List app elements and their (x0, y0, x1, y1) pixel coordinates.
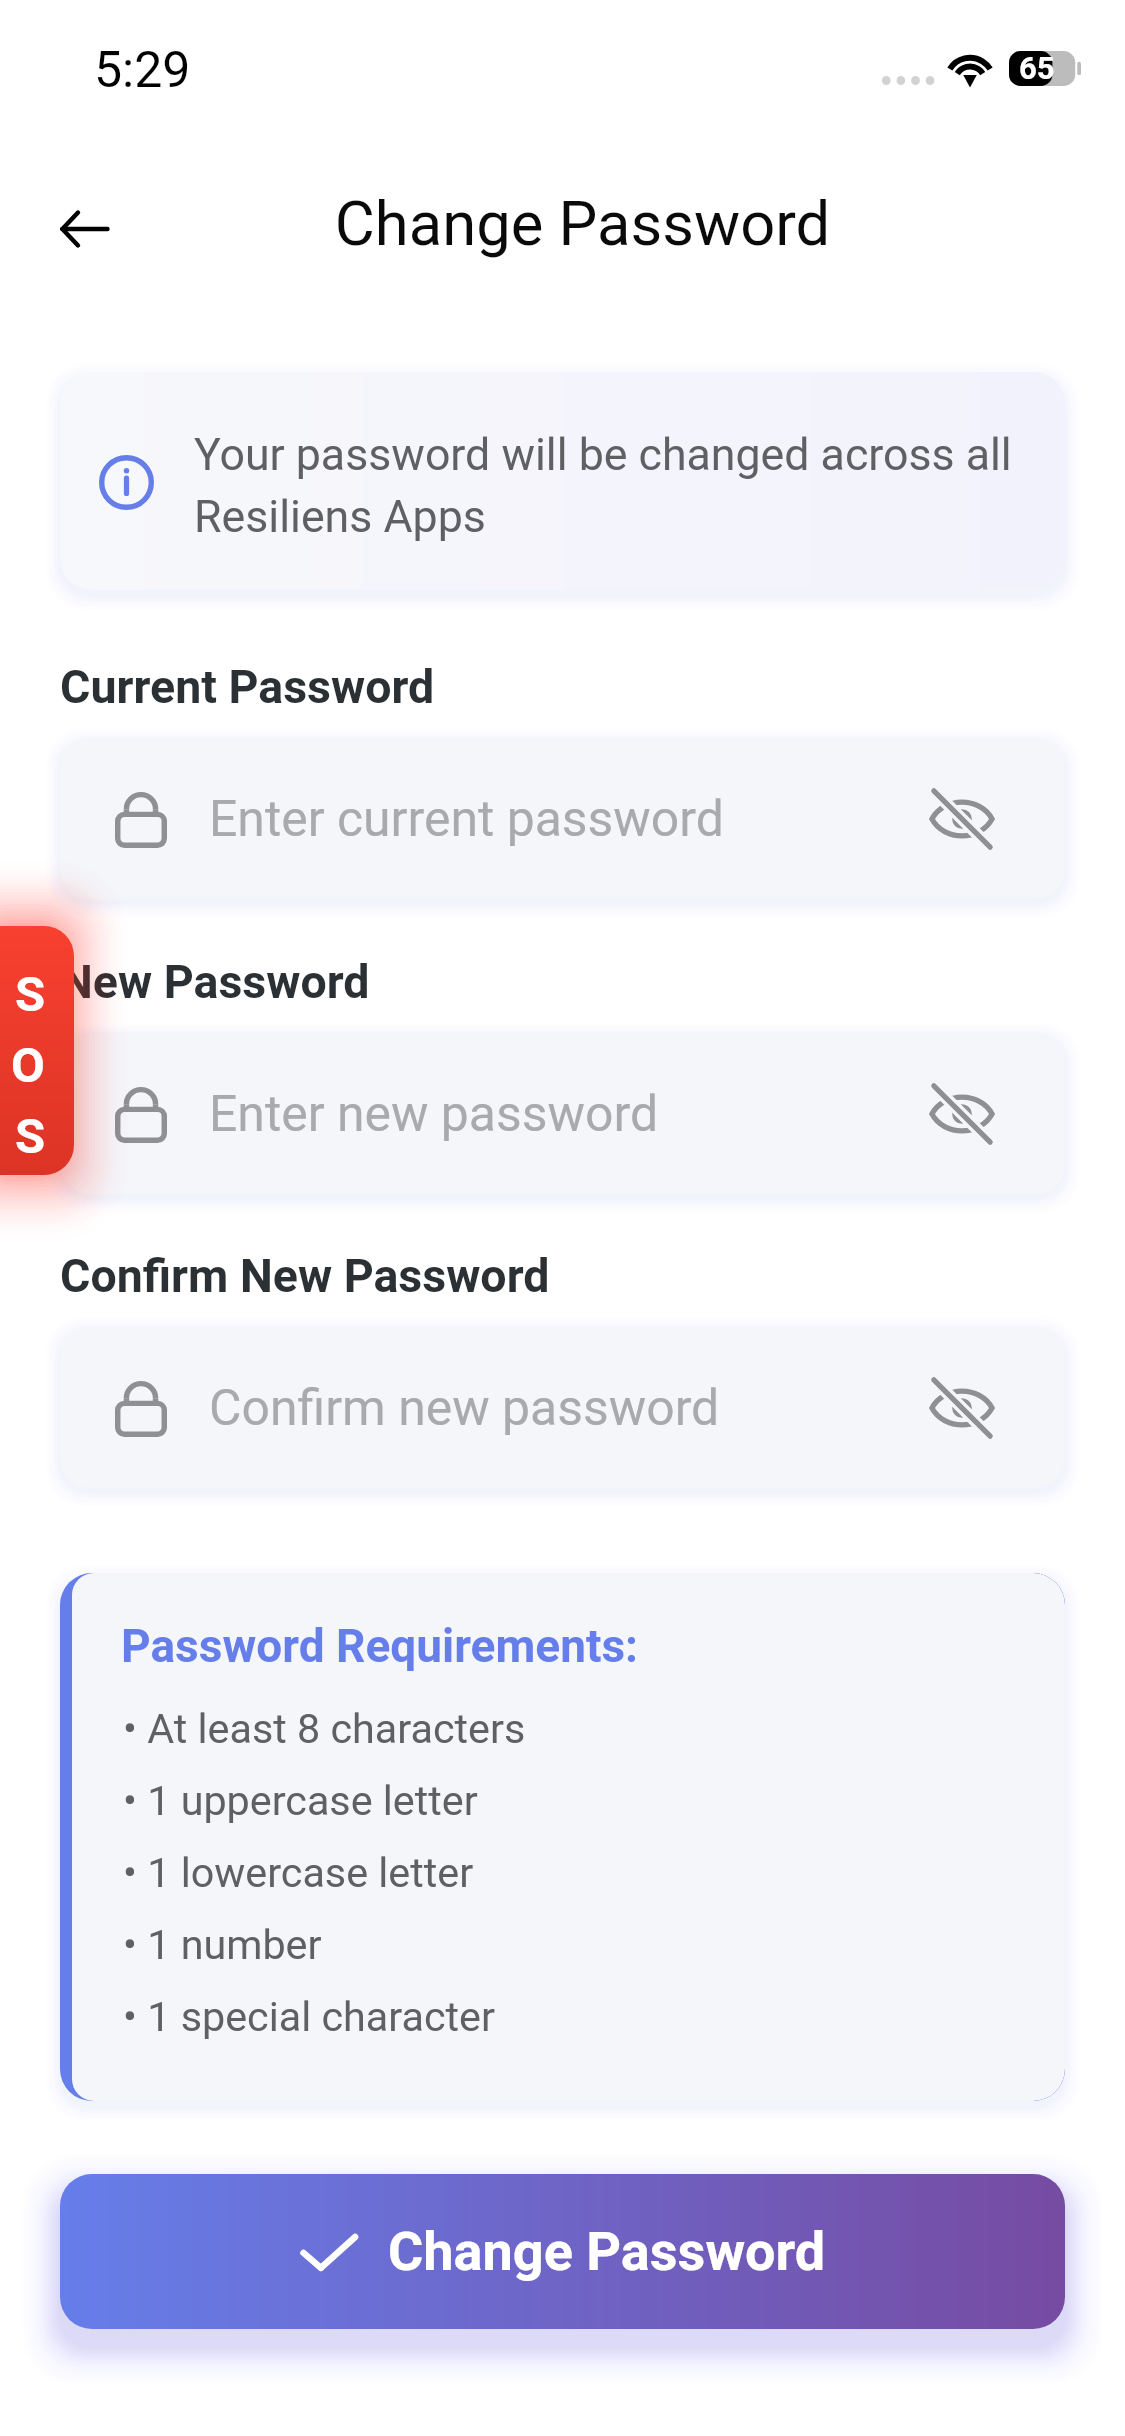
staticText: S (15, 1108, 46, 1165)
staticText: 5:29 (94, 41, 191, 100)
staticText: • At least 8 characters (123, 1705, 526, 1753)
staticText: 65 (1019, 50, 1055, 85)
button[interactable]: SOS emergency (0, 926, 74, 1175)
button[interactable]: Show password (920, 1366, 1004, 1450)
staticText: Change Password (20, 188, 1125, 260)
button[interactable]: Back (36, 181, 132, 277)
staticText: Change Password (388, 2220, 826, 2283)
staticText: • 1 special character (123, 1993, 495, 2041)
button[interactable]: Confirm new password (60, 1327, 1065, 1488)
button[interactable]: Enter current password (60, 738, 1065, 899)
staticText: Your password will be changed across all… (194, 429, 1012, 543)
button[interactable]: Show password (920, 1072, 1004, 1156)
staticText: Enter new password (209, 1085, 659, 1143)
staticText: • 1 number (123, 1921, 322, 1969)
staticText: Current Password (60, 660, 435, 714)
staticText: • 1 lowercase letter (123, 1849, 474, 1897)
staticText: Enter current password (209, 790, 724, 848)
staticText: Confirm New Password (60, 1249, 550, 1303)
staticText: Password Requirements: (121, 1619, 639, 1673)
button[interactable]: Enter new password (60, 1033, 1065, 1194)
staticText: Confirm new password (209, 1379, 720, 1437)
staticText: • 1 uppercase letter (123, 1777, 478, 1825)
staticText: O (11, 1037, 45, 1094)
button[interactable]: Change Password (60, 2174, 1065, 2329)
button[interactable]: Show password (920, 777, 1004, 861)
staticText: S (15, 966, 46, 1023)
staticText: New Password (60, 955, 370, 1009)
